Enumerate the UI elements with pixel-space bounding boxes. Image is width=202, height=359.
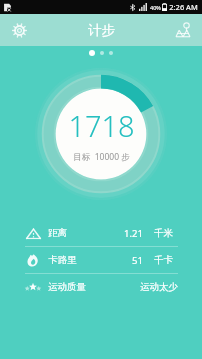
button[interactable]: 距离 (0, 220, 202, 246)
staticText: 计步 (88, 22, 115, 39)
staticText: 千卡 (154, 254, 173, 266)
button[interactable]: Settings (6, 17, 32, 43)
staticText: 51 (132, 254, 143, 267)
staticText: 运动太少 (140, 281, 178, 293)
button[interactable]: Map (170, 17, 196, 43)
staticText: 运动质量 (48, 281, 86, 293)
staticText: 距离 (48, 227, 67, 239)
staticText: 卡路里 (48, 254, 77, 266)
button[interactable]: 运动质量 (0, 274, 202, 300)
button[interactable]: 卡路里 (0, 247, 202, 273)
staticText: 1718 (68, 106, 135, 145)
staticText: 1.21 (124, 227, 143, 240)
staticText: 千米 (154, 227, 173, 239)
staticText: 40% (150, 4, 161, 11)
staticText: 2:26 AM (169, 2, 198, 12)
staticText: 目标 10000 步 (73, 151, 130, 163)
